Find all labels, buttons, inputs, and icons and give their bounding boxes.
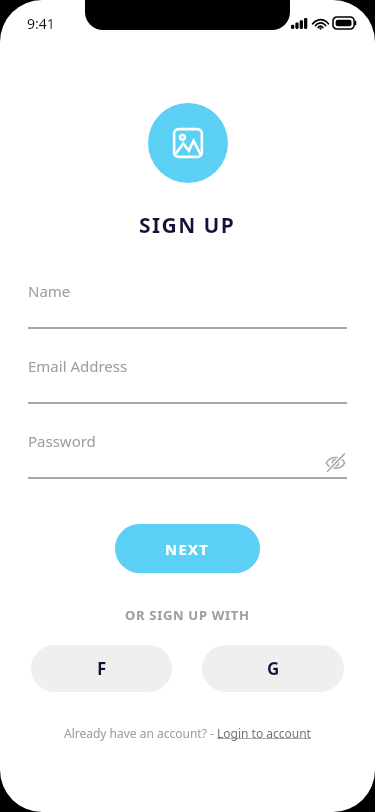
button[interactable]: Name (28, 281, 347, 329)
staticText: Name (28, 281, 71, 301)
staticText: Password (28, 431, 96, 451)
staticText: G (267, 657, 280, 680)
button[interactable]: Email Address (28, 356, 347, 404)
button[interactable]: Show password (323, 450, 347, 474)
button[interactable]: Sign up with Google (202, 645, 344, 692)
staticText: OR SIGN UP WITH (125, 606, 250, 624)
staticText: 9:41 (27, 14, 55, 33)
staticText: F (97, 657, 107, 680)
staticText: SIGN UP (139, 211, 236, 240)
staticText: NEXT (165, 539, 210, 559)
button[interactable]: Sign up with Facebook (31, 645, 172, 692)
button[interactable]: NEXT (115, 524, 260, 573)
staticText: Already have an account? - Login to acco… (64, 725, 311, 741)
button[interactable]: Password (28, 431, 347, 479)
button[interactable]: Add profile photo (148, 103, 228, 183)
button[interactable]: Already have an account? - Login to acco… (64, 725, 311, 741)
staticText: Email Address (28, 356, 128, 376)
